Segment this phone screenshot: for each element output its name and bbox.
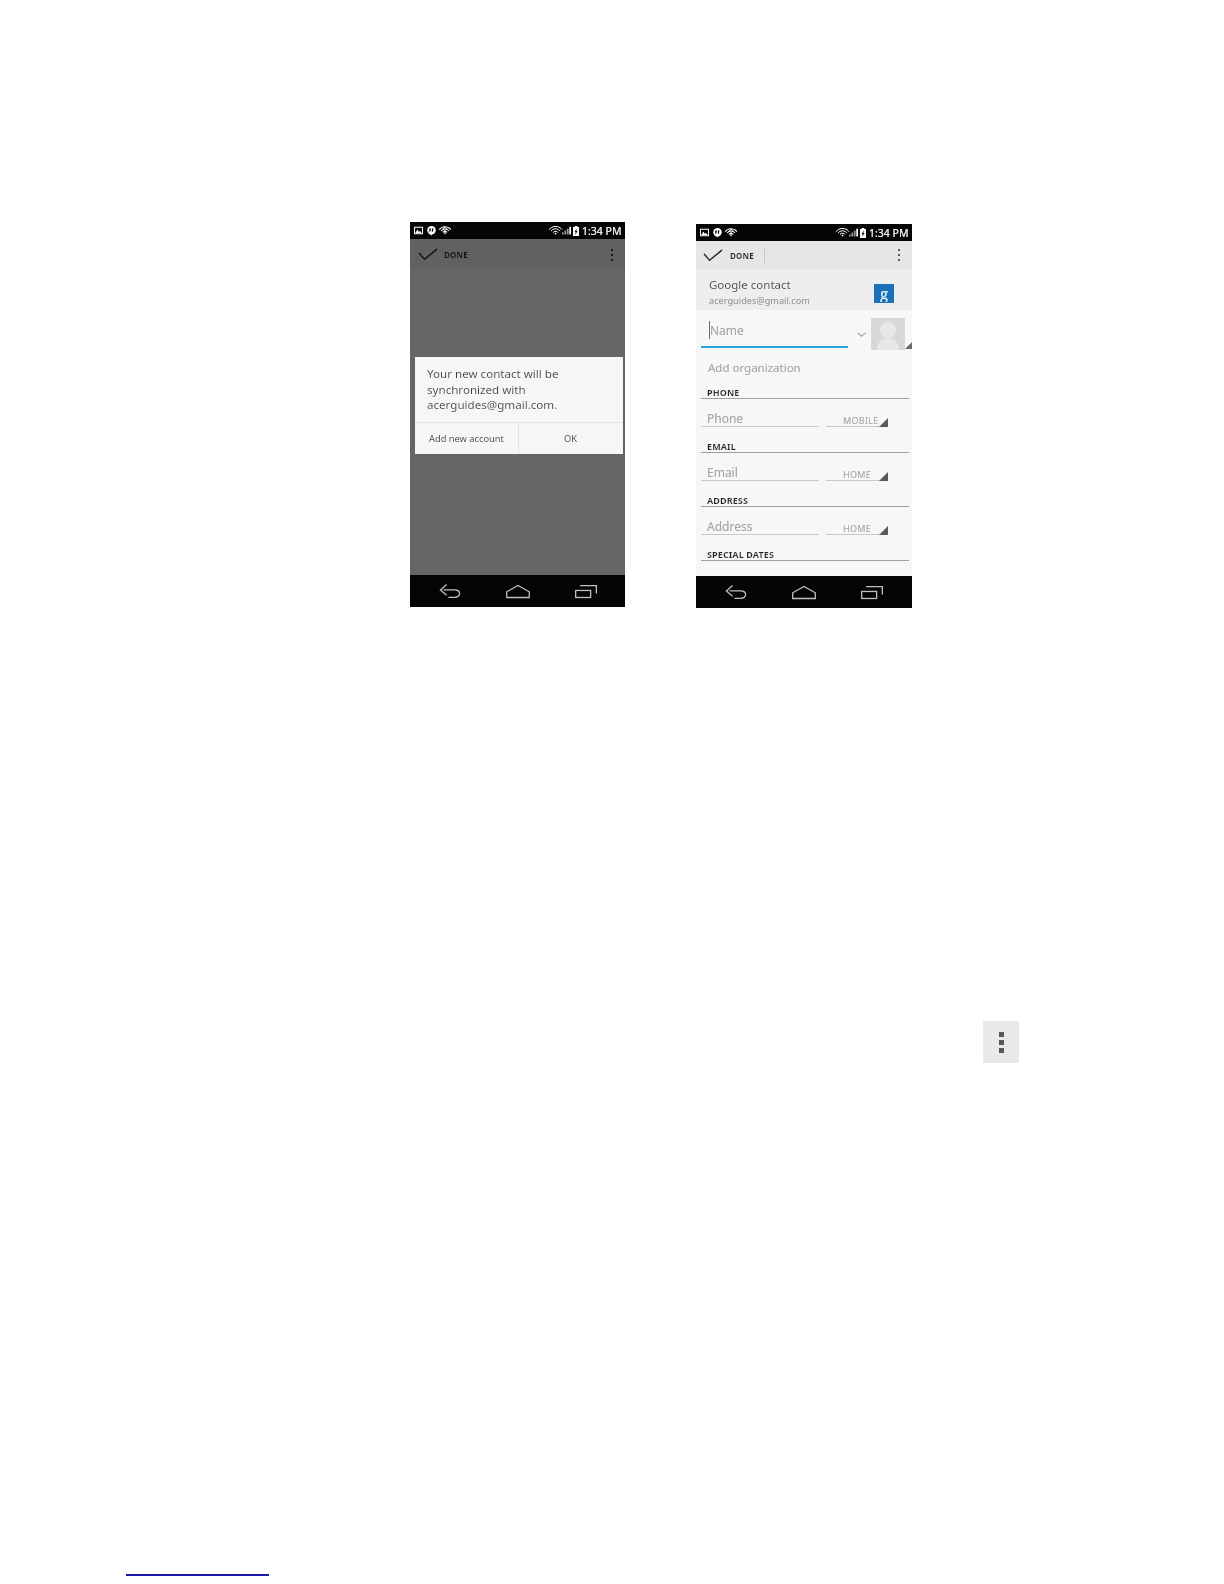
button[interactable]: Add organization [696,354,912,382]
staticText: Add organization [708,360,801,376]
staticText: DONE [730,250,754,261]
button[interactable]: Google contact [696,269,912,310]
staticText: OK [564,432,578,445]
staticText: EMAIL [707,440,736,452]
button[interactable]: Address [701,507,819,523]
button[interactable]: DONE [704,246,754,265]
button[interactable]: Recent apps [842,576,902,608]
button[interactable]: Phone [701,399,819,415]
staticText: 1:34 PM [582,224,622,238]
staticText: Add new account [429,432,504,445]
button[interactable]: Email [701,453,819,469]
staticText: Phone [707,410,744,426]
staticText: PHONE [707,386,740,398]
staticText: 1:34 PM [869,226,909,240]
staticText: g [880,283,889,302]
staticText: ADDRESS [707,494,748,506]
button[interactable]: Home [488,575,548,607]
button[interactable]: Expand name [851,324,871,344]
staticText: Name [710,322,744,338]
button[interactable]: Add photo [871,318,905,350]
staticText: Address [707,518,753,534]
staticText: MOBILE [843,414,879,426]
button[interactable]: Back [707,576,767,608]
button[interactable]: More options [891,244,907,266]
staticText: HOME [843,468,872,480]
staticText: Email [707,464,738,480]
button[interactable]: Recent apps [556,575,616,607]
button[interactable]: Home [774,576,834,608]
staticText: SPECIAL DATES [707,548,774,560]
button[interactable]: More options [983,1021,1019,1063]
button[interactable]: OK [519,423,623,454]
staticText: Google contact [709,277,791,293]
staticText: HOME [843,522,872,534]
button[interactable]: More options [604,244,620,266]
staticText: DONE [444,249,468,260]
staticText: Your new contact will be synchronized wi… [427,366,559,412]
staticText: acerguides@gmail.com [709,294,810,307]
button[interactable]: DONE [419,245,468,264]
button[interactable]: Back [421,575,481,607]
button[interactable]: Add new account [415,423,518,454]
